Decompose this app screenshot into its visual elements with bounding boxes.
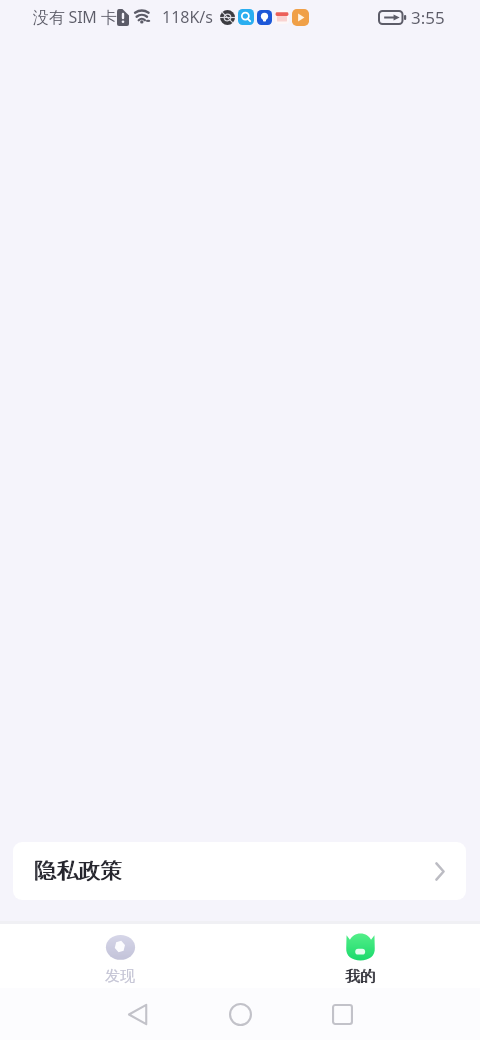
- staticText: 发现: [105, 967, 135, 986]
- staticText: 隐私政策: [35, 857, 123, 885]
- staticText: 3:55: [411, 6, 445, 29]
- button[interactable]: Home: [211, 988, 270, 1040]
- button[interactable]: 隐私政策: [13, 842, 466, 900]
- button[interactable]: Recents: [313, 988, 372, 1040]
- button[interactable]: 发现: [55, 924, 185, 988]
- button[interactable]: 我的: [295, 924, 425, 988]
- staticText: 没有 SIM 卡: [33, 6, 117, 28]
- staticText: 隐私政策: [34, 857, 122, 885]
- staticText: 118K/s: [162, 6, 213, 28]
- button[interactable]: Back: [108, 988, 167, 1040]
- staticText: 我的: [345, 967, 375, 986]
- staticText: 我的: [346, 967, 376, 986]
